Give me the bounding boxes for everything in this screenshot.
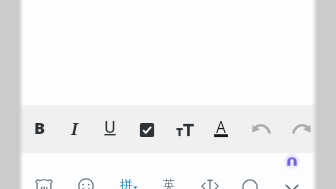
button[interactable]: Italic (57, 111, 91, 145)
button[interactable]: Bold (23, 110, 57, 144)
staticText: B (34, 116, 46, 138)
button[interactable]: Underline (93, 110, 127, 144)
button[interactable]: Hide keyboard (275, 171, 309, 189)
button[interactable]: Move cursor (193, 169, 227, 189)
button[interactable]: Voice input (233, 170, 267, 189)
staticText: 拼 (120, 177, 133, 189)
button[interactable]: Redo (284, 112, 318, 146)
staticText: 英 (163, 177, 176, 189)
button[interactable]: Undo (245, 112, 279, 146)
button[interactable]: Text colour (204, 109, 238, 143)
button[interactable]: Text size (168, 113, 202, 147)
staticText: A (216, 116, 226, 137)
staticText: U (104, 116, 116, 138)
button[interactable]: English input (152, 168, 186, 189)
button[interactable]: Pinyin input (109, 168, 143, 189)
staticText: I (71, 117, 78, 139)
button[interactable]: Stickers (27, 169, 61, 189)
button[interactable]: Checklist (130, 113, 164, 147)
button[interactable]: Emoji (69, 169, 103, 189)
button[interactable]: Assistant (275, 144, 309, 178)
